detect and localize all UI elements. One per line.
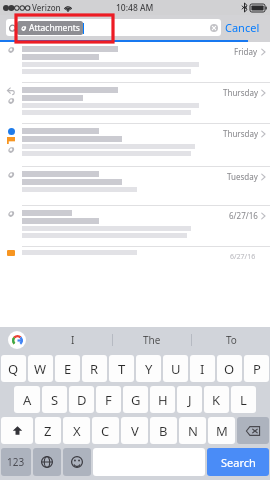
button[interactable]: K [204,386,229,413]
button[interactable]: N [179,417,206,444]
staticText: G [131,391,141,409]
staticText: D [77,391,87,409]
staticText: Q [8,360,19,378]
button[interactable]: Cancel [221,17,264,38]
staticText: Tuesday [227,171,258,182]
staticText: Friday [234,46,258,57]
staticText: V [131,422,139,440]
staticText: Cancel [225,20,260,35]
staticText: S [51,391,59,409]
button[interactable]: U [163,355,188,382]
staticText: P [253,360,261,378]
button[interactable]: Thursday [0,83,270,123]
button[interactable]: T [109,355,134,382]
button[interactable]: H [150,386,175,413]
staticText: 123 [7,455,25,469]
staticText: A [23,391,32,409]
button[interactable]: Z [35,417,61,444]
staticText: 6/27/16 [229,210,258,221]
button[interactable]: J [177,386,202,413]
staticText: L [240,391,247,409]
staticText: I [71,333,75,347]
staticText: 10:48 AM [116,2,154,14]
staticText: M [216,422,228,440]
button[interactable]: 6/27/16 [0,206,270,246]
button[interactable]: Search [207,448,269,476]
staticText: C [101,422,110,440]
staticText: Verizon [32,2,61,13]
staticText: Search [221,455,256,470]
button[interactable]: G [123,386,148,413]
button[interactable]: A [14,386,40,413]
staticText: The [143,333,161,347]
button[interactable]: F [96,386,121,413]
staticText: I [200,360,205,378]
staticText: T [118,360,126,378]
staticText: U [171,360,181,378]
button[interactable]: E [55,355,80,382]
staticText: B [159,422,168,440]
button[interactable]: O [217,355,242,382]
button[interactable]: The [113,327,191,353]
button[interactable]: Emoji [63,448,91,476]
staticText: Attachments [29,22,80,34]
staticText: E [64,360,72,378]
button[interactable]: X [63,417,90,444]
button[interactable]: C [92,417,119,444]
button[interactable]: Attachments [6,19,221,36]
button[interactable]: L [231,386,256,413]
staticText: O [224,360,235,378]
button[interactable]: R [82,355,107,382]
button[interactable]: To [192,327,270,353]
staticText: W [34,360,47,378]
button[interactable]: Clear search [210,24,218,32]
staticText: X [73,422,81,440]
staticText: 6/27/16 [230,252,256,261]
button[interactable]: P [244,355,269,382]
button[interactable]: V [121,417,148,444]
button[interactable]: Google [0,327,34,353]
staticText: H [158,391,168,409]
staticText: Z [44,422,52,440]
staticText: N [188,422,198,440]
staticText: Thursday [223,87,258,98]
staticText: J [188,391,192,409]
button[interactable]: S [42,386,67,413]
button[interactable]: W [28,355,53,382]
staticText: K [212,391,221,409]
button[interactable]: 123 [1,448,31,476]
button[interactable]: Backspace [237,417,269,444]
button[interactable]: B [150,417,177,444]
staticText: R [90,360,99,378]
button[interactable]: Shift [1,417,33,444]
button[interactable]: Change keyboard [33,448,61,476]
button[interactable]: I [190,355,215,382]
button[interactable]: Attachments [20,22,80,34]
button[interactable]: Tuesday [0,167,270,205]
staticText: Thursday [223,128,258,139]
button[interactable]: Y [136,355,161,382]
staticText: Y [145,360,153,378]
button[interactable]: M [208,417,235,444]
button[interactable]: Friday [0,42,270,82]
button[interactable]: Thursday [0,124,270,166]
staticText: F [105,391,112,409]
staticText: To [226,333,237,347]
button[interactable]: I [34,327,112,353]
button[interactable]: D [69,386,94,413]
button[interactable]: Q [1,355,26,382]
